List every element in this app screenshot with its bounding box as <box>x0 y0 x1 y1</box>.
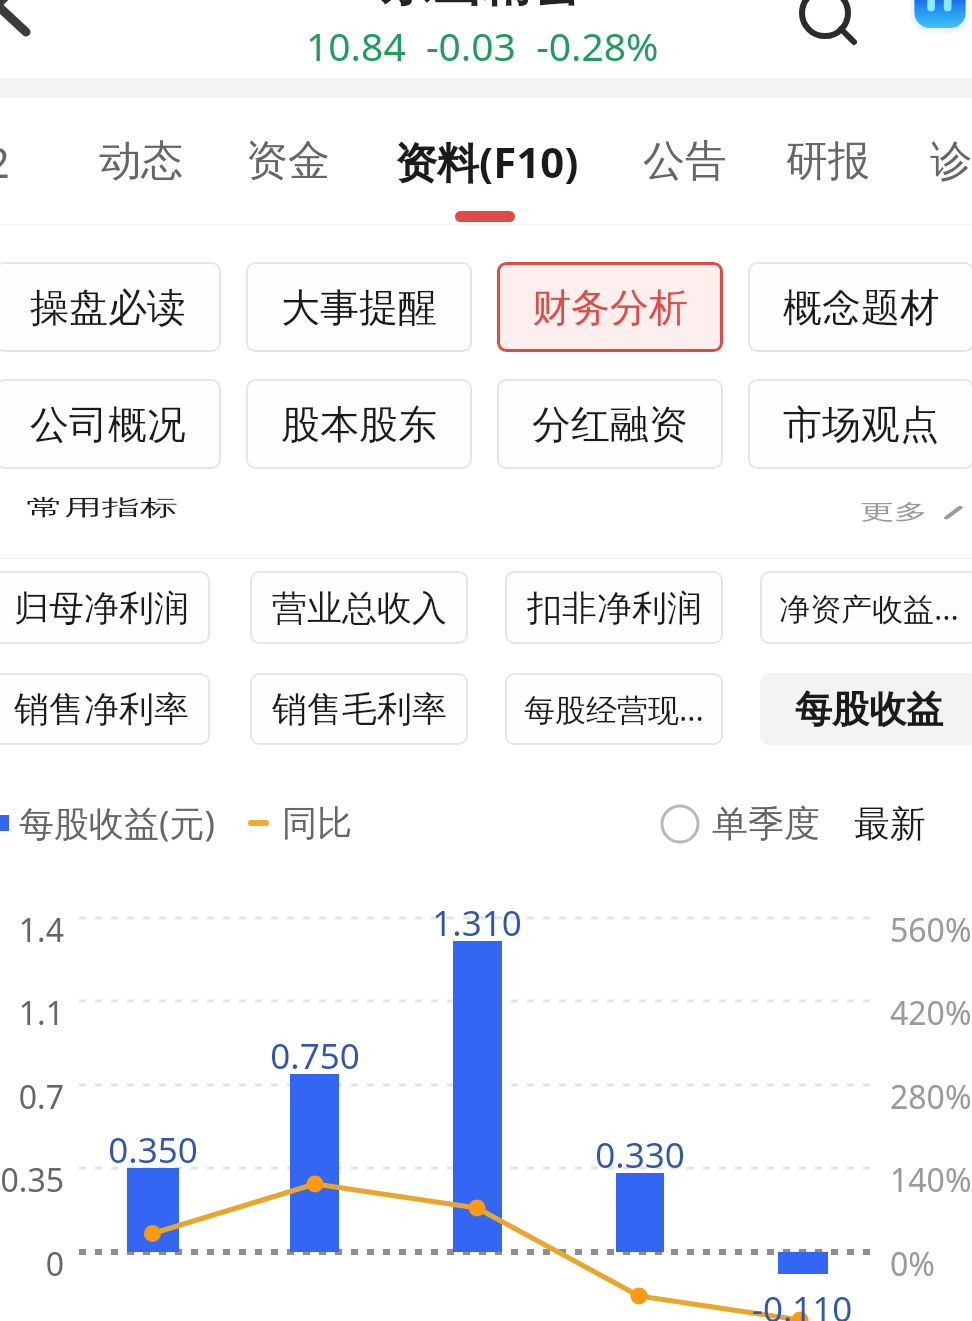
staticText: 财务分析 <box>532 283 688 332</box>
staticText: 诊股 <box>930 135 972 188</box>
staticText: 1.310 <box>377 899 577 947</box>
button[interactable]: 每股收益 <box>760 673 972 745</box>
button[interactable]: 每股经营现... <box>505 673 723 745</box>
staticText: 140% <box>890 1158 972 1202</box>
staticText: 销售毛利率 <box>272 687 447 731</box>
staticText: 更多 <box>860 499 928 526</box>
staticText: 资料(F10) <box>395 133 579 190</box>
staticText: 1.4 <box>0 908 64 952</box>
button[interactable]: AI assistant <box>908 0 972 46</box>
staticText: -0.110 <box>702 1285 902 1321</box>
staticText: 0 <box>0 1242 64 1286</box>
staticText: 1.1 <box>0 991 64 1035</box>
button[interactable] <box>660 804 700 844</box>
button[interactable]: 净资产收益... <box>760 571 972 644</box>
staticText: 净资产收益... <box>779 587 959 629</box>
button[interactable]: 动态 <box>97 98 185 225</box>
button[interactable]: 销售净利率 <box>0 673 210 745</box>
button[interactable]: 财务分析 <box>497 262 723 352</box>
button[interactable]: 资金 <box>244 98 332 225</box>
button[interactable]: 销售毛利率 <box>250 673 468 745</box>
staticText: 0.330 <box>540 1131 740 1179</box>
staticText: 归母净利润 <box>14 586 189 630</box>
button[interactable]: 股本股东 <box>246 379 472 469</box>
staticText: 公司概况 <box>30 400 186 449</box>
button[interactable]: 大事提醒 <box>246 262 472 352</box>
button[interactable]: Back <box>0 0 56 48</box>
staticText: 同比 <box>282 801 352 845</box>
button[interactable]: 扣非净利润 <box>505 571 723 644</box>
staticText: 560% <box>890 908 972 952</box>
staticText: 0.350 <box>53 1126 253 1174</box>
staticText: 概念题材 <box>783 283 939 332</box>
staticText: 0% <box>890 1242 935 1286</box>
button[interactable]: 最新 <box>854 801 926 846</box>
button[interactable]: 研报 <box>784 98 872 225</box>
staticText: 公告 <box>643 135 727 188</box>
button[interactable]: 市场观点 <box>748 379 972 469</box>
staticText: 分红融资 <box>532 400 688 449</box>
button[interactable]: Search <box>790 0 860 48</box>
staticText: 10.84 -0.03 -0.28% <box>306 19 659 72</box>
staticText: 资金 <box>246 135 330 188</box>
staticText: 每股收益 <box>795 686 943 733</box>
staticText: 扣非净利润 <box>527 586 702 630</box>
button[interactable]: 归母净利润 <box>0 571 210 644</box>
button[interactable]: 诊股 <box>928 98 972 225</box>
staticText: 常用指标 <box>26 494 178 522</box>
button[interactable]: 更多 <box>860 499 968 526</box>
staticText: 420% <box>890 991 972 1035</box>
button[interactable]: 概念题材 <box>748 262 972 352</box>
button[interactable]: 公告 <box>641 98 729 225</box>
button[interactable]: 公司概况 <box>0 379 221 469</box>
button[interactable]: _2 <box>0 98 32 225</box>
staticText: 研报 <box>786 135 870 188</box>
staticText: _2 <box>0 133 10 190</box>
staticText: 操盘必读 <box>30 283 186 332</box>
button[interactable]: 营业总收入 <box>250 571 468 644</box>
staticText: 0.750 <box>215 1032 415 1080</box>
staticText: 单季度 <box>712 801 820 846</box>
staticText: 0.7 <box>0 1075 64 1119</box>
button[interactable]: 资料(F10) <box>392 98 582 225</box>
staticText: 市场观点 <box>783 400 939 449</box>
staticText: 销售净利率 <box>14 687 189 731</box>
staticText: 0.35 <box>0 1158 64 1202</box>
staticText: 东山精密 <box>381 0 581 15</box>
staticText: 动态 <box>99 135 183 188</box>
staticText: 每股经营现... <box>524 688 704 730</box>
staticText: 营业总收入 <box>272 586 447 630</box>
staticText: 280% <box>890 1075 972 1119</box>
staticText: 大事提醒 <box>281 283 437 332</box>
button[interactable]: 分红融资 <box>497 379 723 469</box>
button[interactable]: 操盘必读 <box>0 262 221 352</box>
staticText: 每股收益(元) <box>19 799 216 847</box>
staticText: 股本股东 <box>281 400 437 449</box>
